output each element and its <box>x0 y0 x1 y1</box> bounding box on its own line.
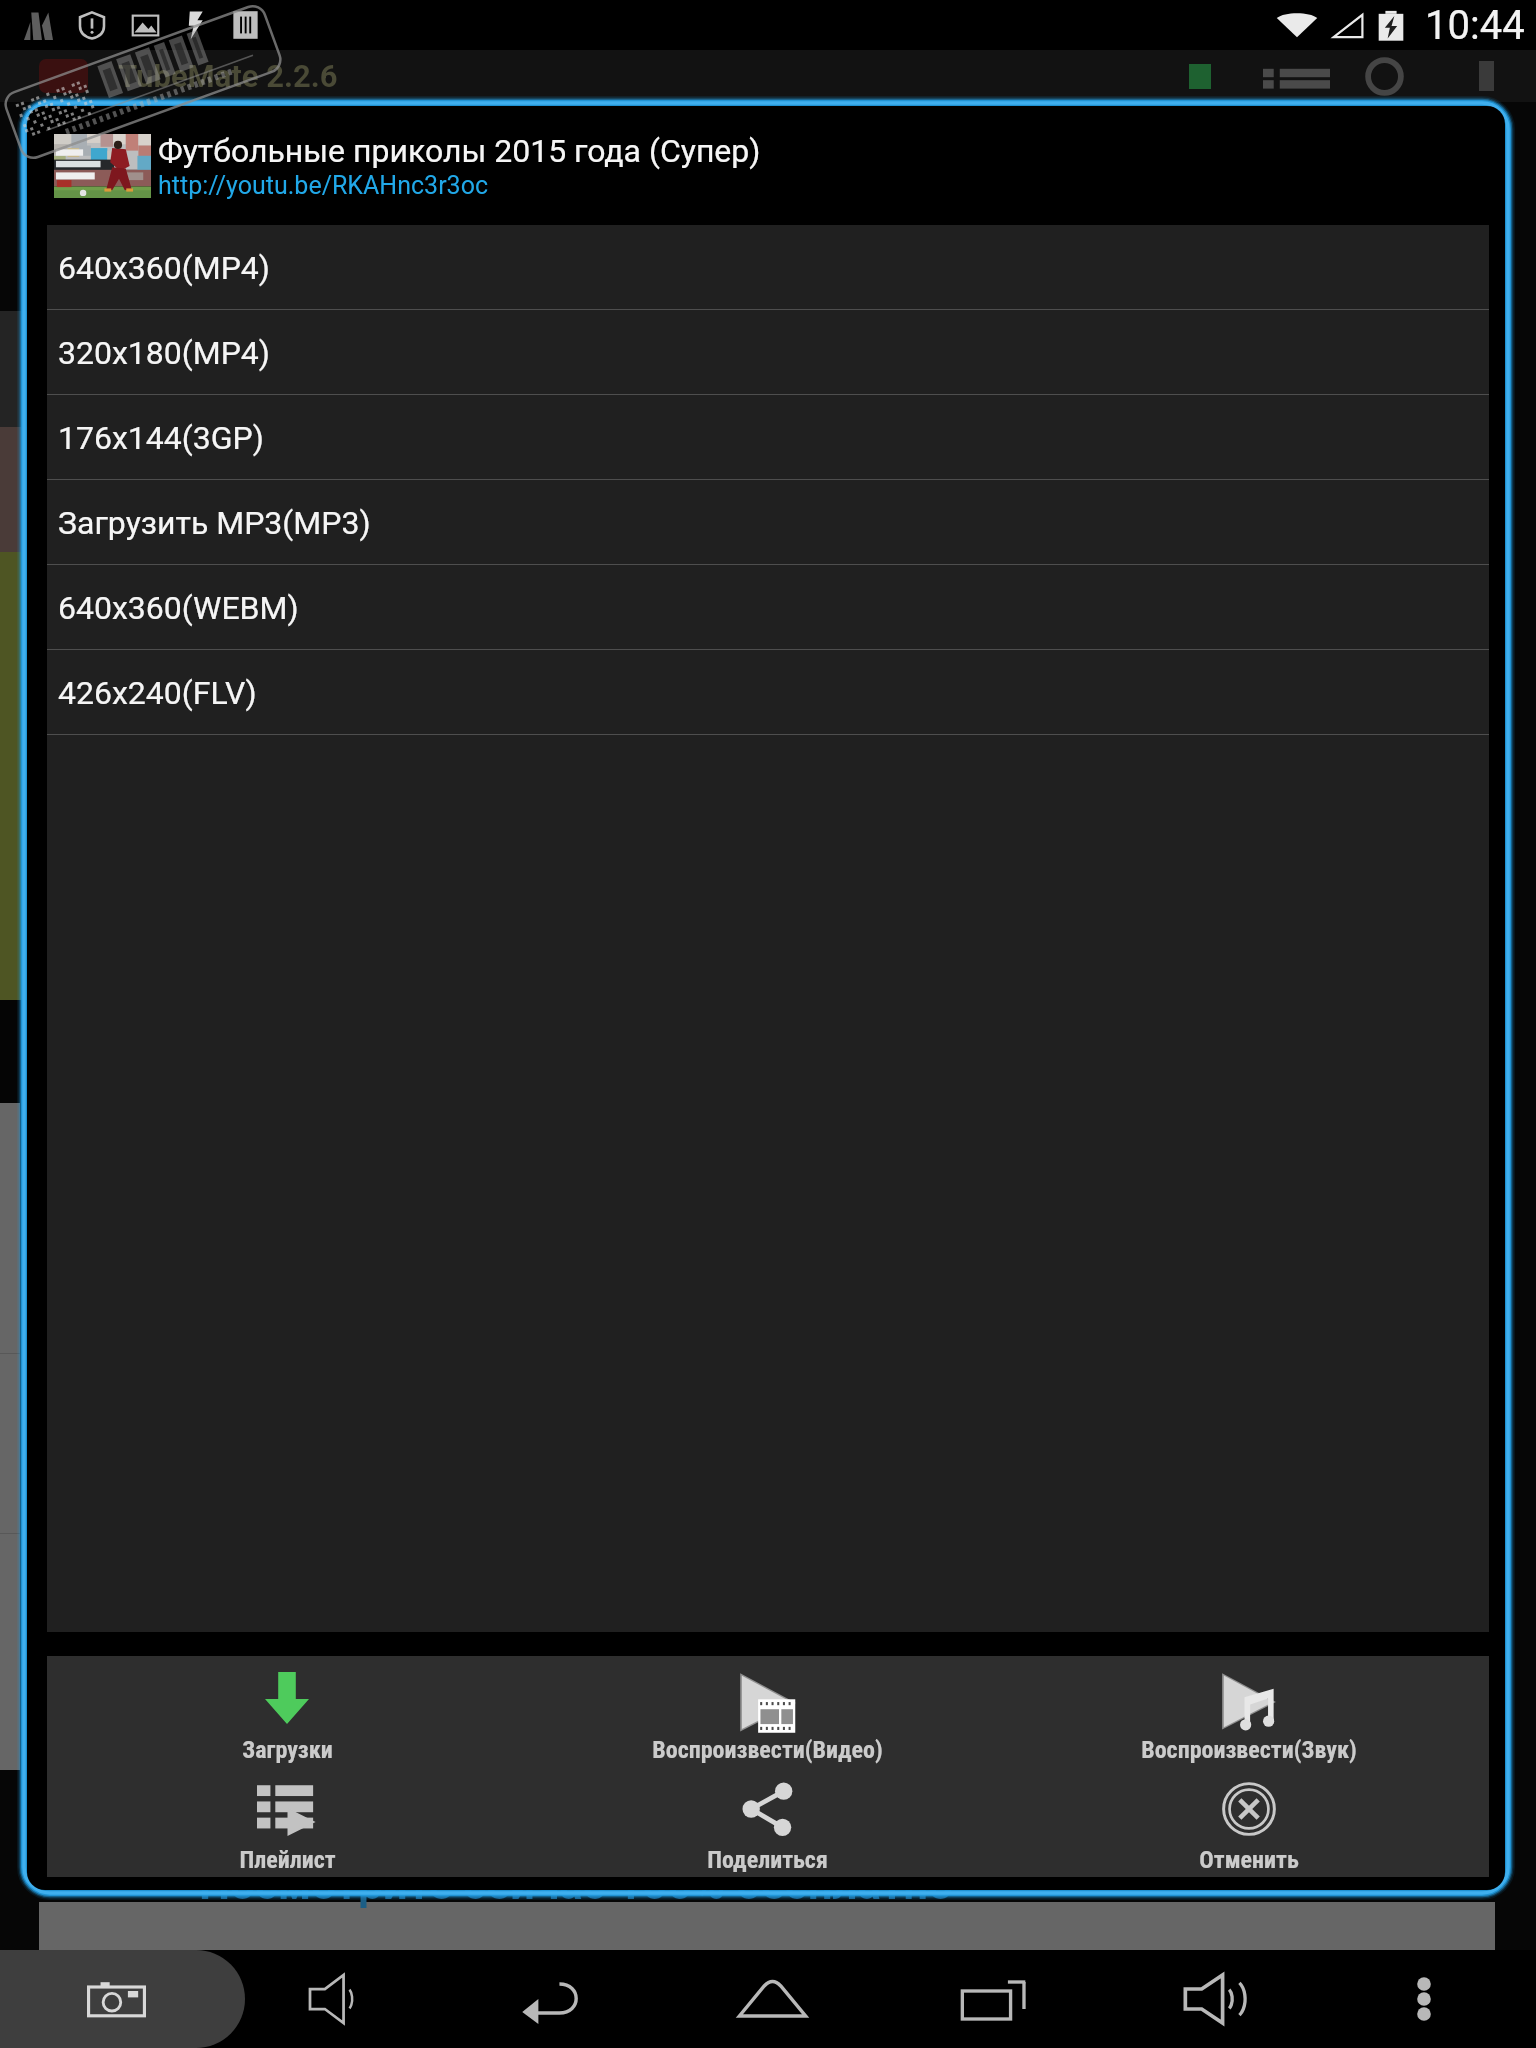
staticText: 426x240(FLV) <box>58 674 257 712</box>
staticText: http://youtu.be/RKAHnc3r3oc <box>158 171 489 200</box>
button[interactable]: Volume up <box>1184 1950 1251 2048</box>
button[interactable]: More options <box>1410 1950 1450 2048</box>
staticText: Посмотрите сейчас 100% бесплатно <box>199 1858 953 1908</box>
button[interactable]: Поделиться <box>527 1766 1008 1877</box>
button[interactable]: 640x360(WEBM) <box>47 565 1489 650</box>
button[interactable]: Загрузки <box>47 1656 527 1766</box>
button[interactable]: Recents <box>961 1950 1028 2048</box>
staticText: Отменить <box>1199 1846 1299 1874</box>
staticText: 640x360(WEBM) <box>58 589 299 627</box>
staticText: Плейлист <box>239 1846 336 1874</box>
staticText: 320x180(MP4) <box>58 334 270 372</box>
button[interactable]: Воспроизвести(Звук) <box>1008 1656 1489 1766</box>
button[interactable]: Плейлист <box>47 1766 527 1877</box>
staticText: Воспроизвести(Звук) <box>1141 1736 1357 1764</box>
button[interactable]: Search <box>1364 56 1405 97</box>
button[interactable]: Загрузить MP3(MP3) <box>47 480 1489 565</box>
button[interactable]: Футбольные приколы 2015 года (Супер) <box>27 106 1505 225</box>
staticText: TubeMate 2.2.6 <box>118 58 338 94</box>
staticText: 176x144(3GP) <box>58 419 264 457</box>
button[interactable]: Воспроизвести(Видео) <box>527 1656 1008 1766</box>
staticText: Воспроизвести(Видео) <box>652 1736 883 1764</box>
button[interactable]: Camera <box>0 1950 245 2048</box>
staticText: Футбольные приколы 2015 года (Супер) <box>158 132 761 170</box>
staticText: Загрузить MP3(MP3) <box>58 504 371 542</box>
button[interactable]: Home <box>738 1950 807 2048</box>
staticText: 10:44 <box>1425 2 1525 49</box>
staticText: Поделиться <box>707 1846 828 1874</box>
staticText: 640x360(MP4) <box>58 249 270 287</box>
button[interactable]: Отменить <box>1008 1766 1489 1877</box>
button[interactable]: 426x240(FLV) <box>47 650 1489 735</box>
button[interactable]: Back <box>521 1950 583 2048</box>
button[interactable]: Volume down <box>309 1950 359 2048</box>
button[interactable]: Downloads list <box>1263 61 1330 91</box>
button[interactable]: 320x180(MP4) <box>47 310 1489 395</box>
button[interactable]: 176x144(3GP) <box>47 395 1489 480</box>
button[interactable]: 640x360(MP4) <box>47 225 1489 310</box>
staticText: Загрузки <box>242 1736 333 1764</box>
